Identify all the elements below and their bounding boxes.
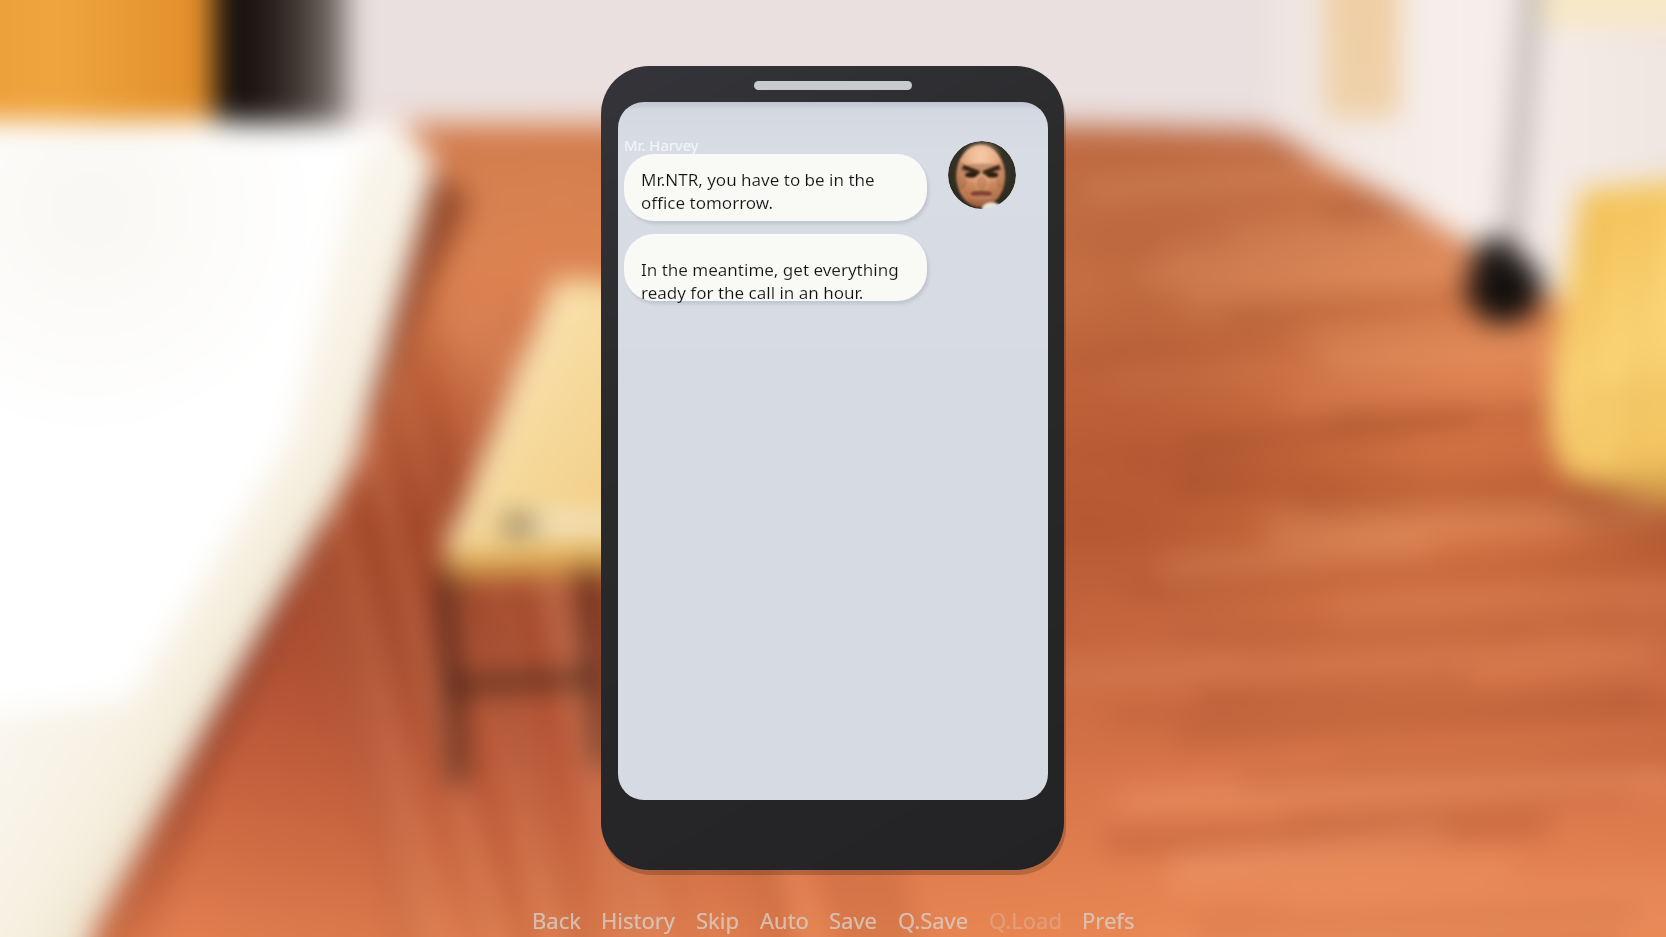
button[interactable]: Q.Save — [888, 903, 979, 937]
button[interactable]: Back — [522, 903, 591, 937]
button[interactable]: Mr. Harvey profile photo — [948, 141, 1016, 209]
button[interactable]: Save — [819, 903, 888, 937]
staticText: Back — [532, 905, 581, 935]
button[interactable]: Prefs — [1072, 903, 1145, 937]
staticText: ready for the call in an hour. — [641, 281, 864, 304]
staticText: Save — [829, 905, 878, 935]
staticText: In the meantime, get everything — [641, 258, 899, 281]
button[interactable]: History — [591, 903, 686, 937]
staticText: Q.Save — [898, 905, 969, 935]
staticText: Auto — [760, 905, 809, 935]
button[interactable]: Phone screen — [618, 102, 1048, 800]
staticText: Skip — [696, 905, 740, 935]
staticText: Q.Load — [989, 905, 1062, 935]
button[interactable]: Mr.NTR, you have to be in the — [624, 154, 927, 221]
staticText: Prefs — [1082, 905, 1135, 935]
staticText: Mr. Harvey — [624, 135, 699, 155]
staticText: Mr.NTR, you have to be in the — [641, 168, 875, 191]
button[interactable]: Advance dialogue — [0, 0, 1666, 937]
button[interactable]: Q.Load — [979, 903, 1072, 937]
staticText: office tomorrow. — [641, 191, 774, 214]
button[interactable]: In the meantime, get everything — [624, 234, 927, 301]
button[interactable]: Skip — [686, 903, 750, 937]
staticText: History — [601, 905, 676, 935]
button[interactable]: Auto — [750, 903, 819, 937]
